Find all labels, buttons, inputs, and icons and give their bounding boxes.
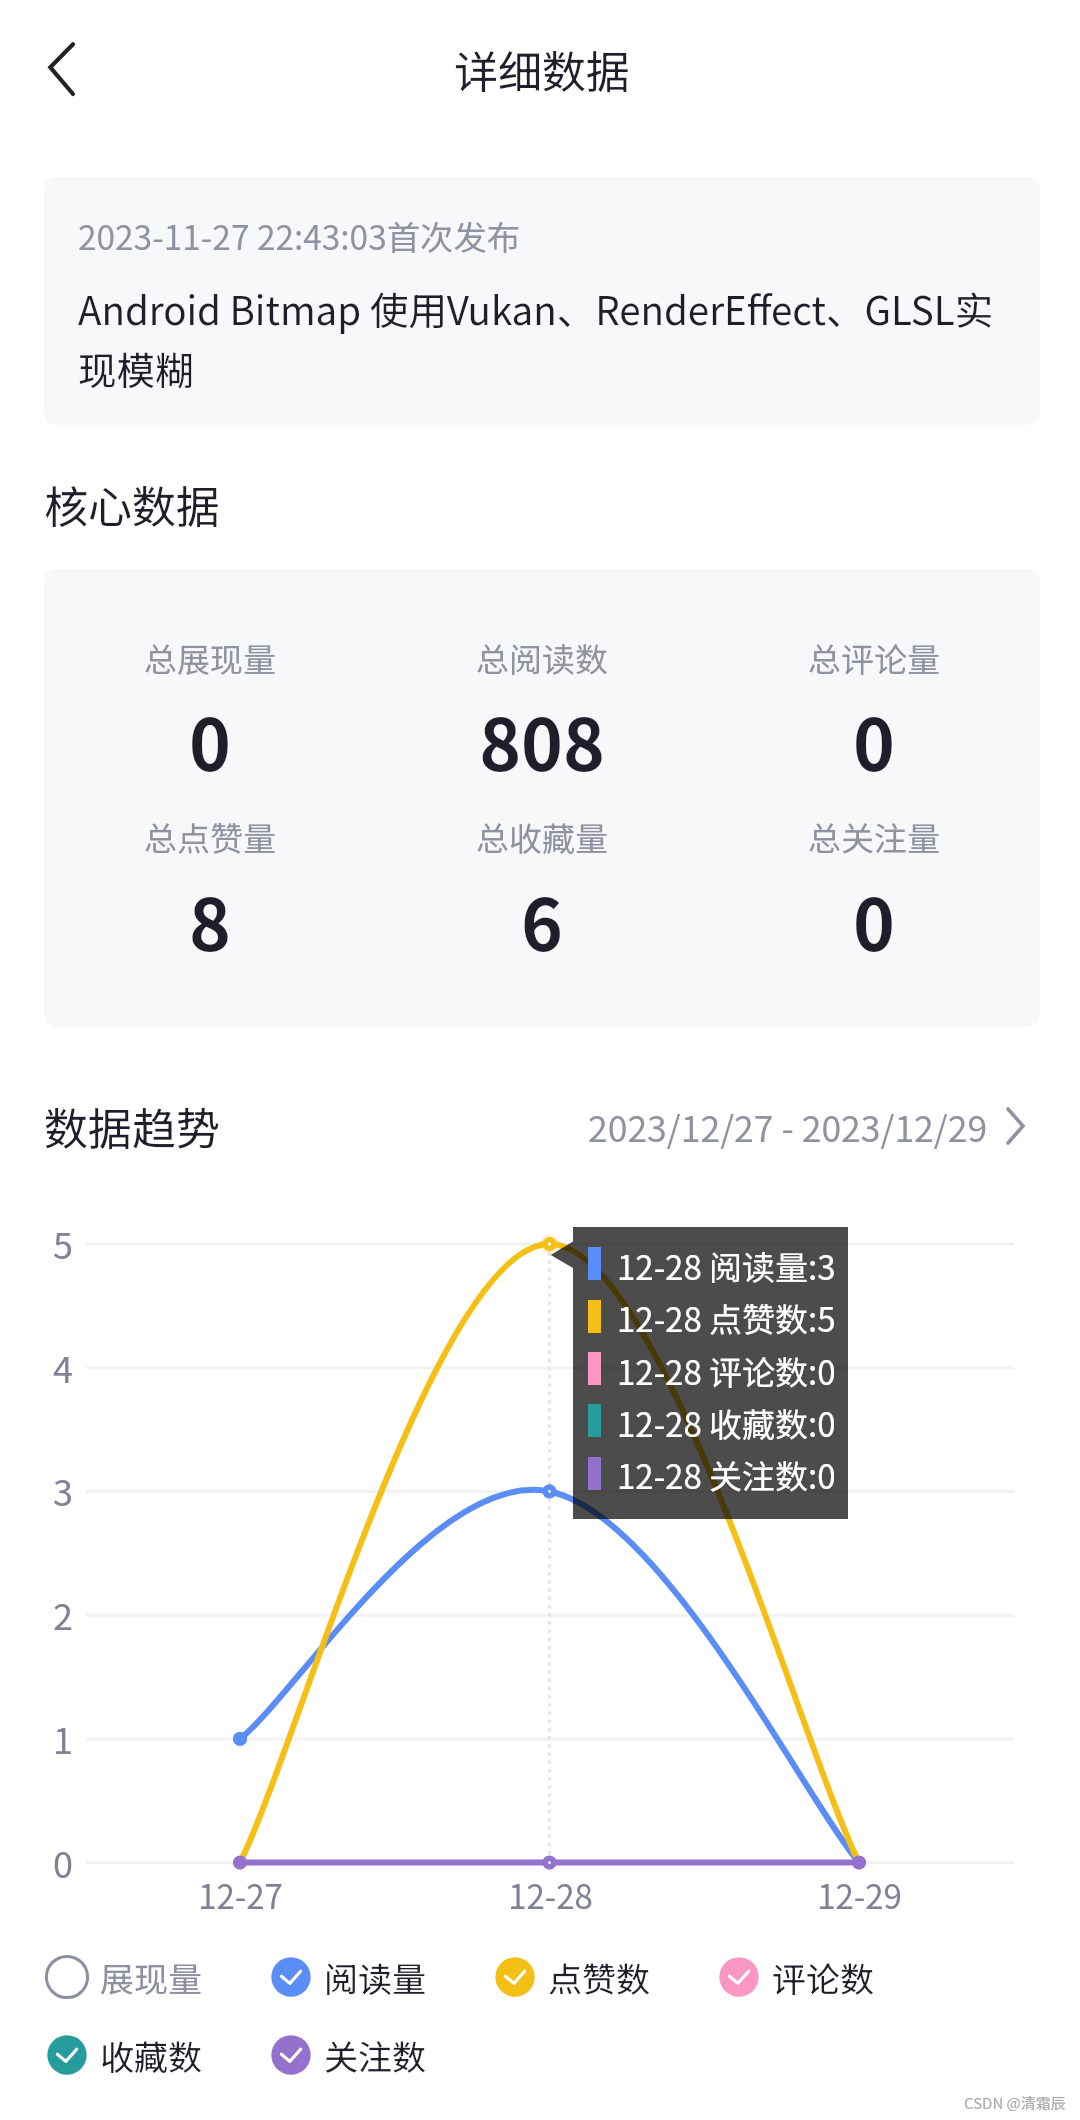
staticText: 2023-11-27 22:43:03首次发布 [78,211,521,259]
staticText: 0 [53,1836,73,1888]
staticText: 核心数据 [44,472,220,536]
staticText: 6 [521,869,563,972]
staticText: 2023/12/27 - 2023/12/29 [588,1101,988,1152]
staticText: 1 [53,1712,73,1764]
staticText: 808 [479,689,605,792]
staticText: 总关注量 [808,813,940,861]
staticText: 总点赞量 [144,813,276,861]
staticText: 0 [853,689,895,792]
staticText: 4 [53,1341,73,1393]
staticText: 数据趋势 [44,1094,220,1158]
button[interactable]: 2023/12/27 - 2023/12/29 [588,1096,1027,1156]
button[interactable]: 2023-11-27 22:43:03首次发布 [44,177,1040,425]
staticText: 0 [189,689,231,792]
staticText: 总展现量 [144,634,276,682]
staticText: 总评论量 [808,634,940,682]
staticText: 关注数 [324,2031,426,2080]
staticText: 点赞数 [548,1953,650,2002]
staticText: 12-27 [198,1871,283,1919]
staticText: CSDN @清霜辰 [964,2092,1066,2114]
button[interactable]: 展现量 [43,1949,202,2005]
staticText: 收藏数 [100,2031,202,2080]
staticText: 12-28 收藏数:0 [617,1399,836,1447]
staticText: 12-28 关注数:0 [617,1451,836,1499]
staticText: 0 [853,869,895,972]
staticText: 5 [53,1217,73,1269]
staticText: 12-28 [508,1871,593,1919]
button[interactable]: Back [20,40,80,100]
staticText: 阅读量 [324,1953,426,2002]
button[interactable]: 阅读量 [267,1949,426,2005]
staticText: Android Bitmap 使用Vukan、RenderEffect、GLSL… [78,280,1008,396]
button[interactable]: 点赞数 [491,1949,650,2005]
staticText: 12-29 [817,1871,902,1919]
staticText: 总收藏量 [476,813,608,861]
staticText: 详细数据 [454,37,630,101]
staticText: 2 [53,1588,73,1640]
button[interactable]: 关注数 [267,2027,426,2083]
staticText: 12-28 评论数:0 [617,1347,836,1395]
staticText: 12-28 阅读量:3 [617,1242,836,1290]
staticText: 展现量 [100,1953,202,2002]
button[interactable]: 评论数 [715,1949,874,2005]
staticText: 3 [53,1464,73,1516]
button[interactable]: 收藏数 [43,2027,202,2083]
staticText: 8 [189,869,231,972]
staticText: 总阅读数 [476,634,608,682]
staticText: 评论数 [772,1953,874,2002]
staticText: 12-28 点赞数:5 [617,1294,836,1342]
